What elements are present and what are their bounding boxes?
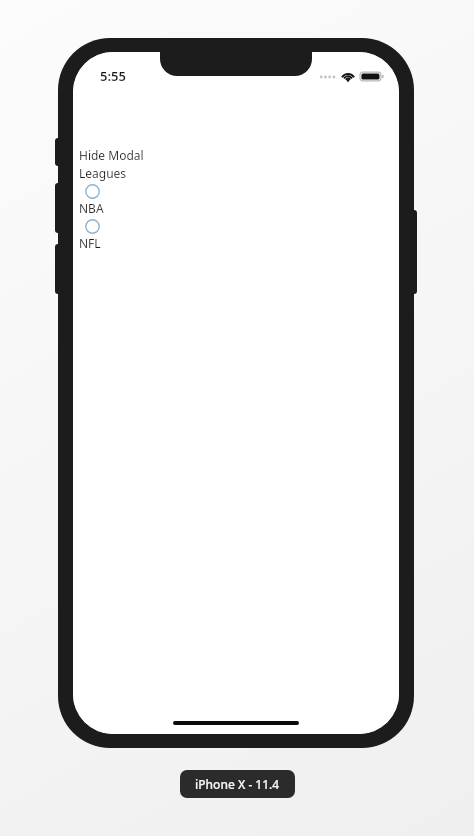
staticText: iPhone X - 11.4: [195, 776, 280, 792]
staticText: NFL: [79, 235, 101, 251]
staticText: 5:55: [100, 67, 126, 85]
button[interactable]: Leagues: [73, 164, 399, 182]
button[interactable]: Hide Modal: [73, 146, 399, 164]
other: Select NBA: [85, 184, 100, 199]
button[interactable]: iPhone X - 11.4: [180, 770, 295, 798]
other: Select NFL: [85, 219, 100, 234]
button[interactable]: Select NFL: [73, 217, 399, 252]
staticText: Leagues: [79, 165, 127, 181]
staticText: NBA: [79, 200, 104, 216]
button[interactable]: Select NBA: [73, 182, 399, 217]
staticText: Hide Modal: [79, 147, 144, 163]
